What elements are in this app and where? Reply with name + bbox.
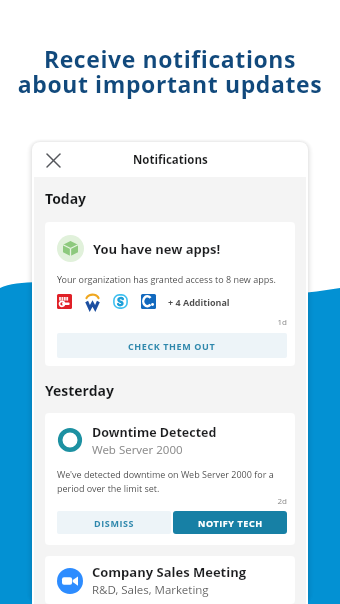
button[interactable]: CHECK THEM OUT <box>57 333 287 358</box>
button[interactable]: NOTIFY TECH <box>173 511 287 534</box>
staticText: Receive notifications about important up… <box>0 43 340 100</box>
staticText: Today <box>45 189 87 208</box>
staticText: + 4 Additional <box>168 296 230 308</box>
staticText: You have new apps! <box>93 240 221 258</box>
staticText: 2d <box>57 495 287 506</box>
button[interactable]: Close <box>40 147 66 173</box>
staticText: R&D, Sales, Marketing <box>92 582 209 598</box>
staticText: Downtime Detected <box>92 424 217 441</box>
staticText: Your organization has granted access to … <box>57 273 276 285</box>
staticText: DISMISS <box>94 517 135 529</box>
staticText: We've detected downtime on Web Server 20… <box>57 468 287 494</box>
staticText: CHECK THEM OUT <box>128 340 216 352</box>
staticText: NOTIFY TECH <box>198 517 263 529</box>
staticText: Notifications <box>133 152 208 168</box>
staticText: Company Sales Meeting <box>92 563 247 581</box>
staticText: Web Server 2000 <box>92 442 183 458</box>
staticText: 1d <box>57 316 287 327</box>
staticText: Yesterday <box>45 381 114 400</box>
button[interactable]: DISMISS <box>57 511 171 534</box>
